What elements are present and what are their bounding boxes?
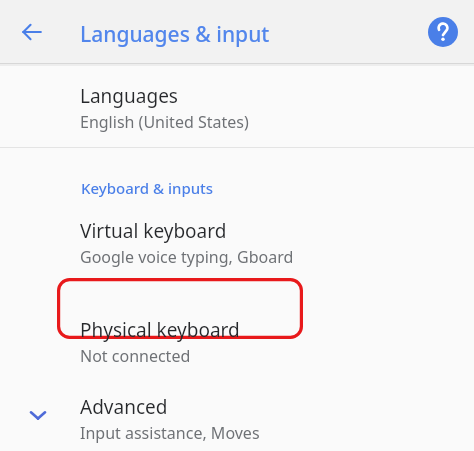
staticText: Keyboard & inputs bbox=[81, 178, 214, 198]
staticText: Input assistance, Moves bbox=[80, 422, 260, 444]
button[interactable]: Physical keyboard bbox=[0, 309, 474, 375]
staticText: Physical keyboard bbox=[80, 317, 240, 343]
staticText: English (United States) bbox=[80, 111, 249, 133]
staticText: Virtual keyboard bbox=[80, 218, 227, 244]
button[interactable]: Languages bbox=[0, 75, 474, 141]
staticText: Not connected bbox=[80, 345, 191, 367]
button[interactable]: Virtual keyboard bbox=[0, 211, 474, 277]
staticText: Languages bbox=[80, 83, 178, 109]
staticText: Google voice typing, Gboard bbox=[80, 246, 294, 268]
button[interactable]: Back bbox=[15, 15, 49, 49]
staticText: Languages & input bbox=[80, 20, 270, 49]
button[interactable]: Advanced bbox=[0, 388, 474, 451]
button[interactable]: Help bbox=[427, 16, 459, 48]
staticText: Advanced bbox=[80, 394, 168, 420]
